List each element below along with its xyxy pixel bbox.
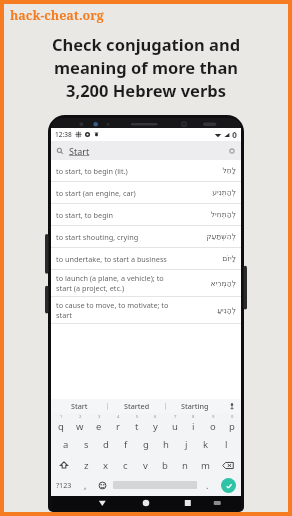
staticText: to cause to move, to motivate; to start	[56, 300, 213, 320]
staticText: hack-cheat.org	[10, 7, 104, 24]
button[interactable]: h	[156, 434, 176, 455]
button[interactable]: 2	[70, 413, 89, 434]
staticText: לְהַמְרִיא	[210, 279, 236, 288]
button[interactable]: d	[96, 434, 116, 455]
button[interactable]: 8	[184, 413, 203, 434]
staticText: לְהַתְחִיל	[210, 210, 236, 219]
button[interactable]: j	[176, 434, 196, 455]
staticText: 12:38	[55, 130, 72, 139]
button[interactable]: Backspace	[215, 455, 241, 475]
button[interactable]: s	[76, 434, 96, 455]
staticText: לָיזֹם	[222, 254, 236, 263]
button[interactable]: x	[96, 455, 115, 475]
staticText: v	[143, 459, 148, 472]
button[interactable]: 7	[165, 413, 184, 434]
staticText: z	[84, 459, 89, 472]
staticText: to undertake, to start a business	[56, 254, 218, 264]
button[interactable]: c	[115, 455, 135, 475]
button[interactable]: Voice input	[223, 399, 241, 413]
staticText: i	[192, 420, 195, 433]
button[interactable]: l	[216, 434, 236, 455]
staticText: לְהַתְנִיע	[212, 188, 236, 197]
staticText: to start, to begin (lit.)	[56, 166, 218, 176]
button[interactable]: 4	[108, 413, 127, 434]
staticText: לְהָנִיעַ	[217, 306, 236, 315]
button[interactable]: 9	[203, 413, 222, 434]
button[interactable]: f	[116, 434, 136, 455]
staticText: u	[172, 420, 178, 433]
staticText: w	[76, 420, 84, 433]
staticText: x	[103, 459, 109, 472]
button[interactable]: b	[155, 455, 175, 475]
staticText: Starting	[181, 401, 209, 411]
staticText: k	[203, 438, 209, 451]
staticText: .	[206, 479, 209, 491]
staticText: 5	[136, 414, 139, 420]
staticText: 3	[98, 414, 101, 420]
staticText: to start, to begin	[56, 210, 206, 220]
button[interactable]: to start shouting, crying	[51, 226, 241, 247]
staticText: y	[153, 420, 158, 433]
button[interactable]: Search	[51, 141, 241, 160]
button[interactable]: 0	[222, 413, 241, 434]
staticText: 8	[192, 414, 195, 420]
staticText: 4	[117, 414, 120, 420]
staticText: r	[116, 420, 120, 433]
staticText: b	[162, 459, 168, 472]
button[interactable]: 1	[51, 413, 70, 434]
staticText: n	[182, 459, 188, 472]
staticText: ,	[84, 479, 87, 491]
staticText: q	[58, 420, 64, 433]
staticText: 9	[212, 414, 215, 420]
staticText: 0	[231, 414, 234, 420]
staticText: to launch (a plane, a vehicle); to start…	[56, 273, 206, 293]
staticText: l	[225, 438, 228, 451]
staticText: e	[96, 420, 102, 433]
button[interactable]: ,	[77, 475, 93, 495]
staticText: Start	[71, 401, 88, 411]
button[interactable]: to start (an engine, car)	[51, 182, 241, 203]
button[interactable]: to cause to move, to motivate; to start	[51, 297, 241, 323]
button[interactable]: 6	[146, 413, 165, 434]
button[interactable]: 5	[127, 413, 146, 434]
staticText: ?123	[56, 480, 72, 490]
staticText: 7	[174, 414, 177, 420]
button[interactable]: to launch (a plane, a vehicle); to start…	[51, 270, 241, 296]
button[interactable]: n	[175, 455, 195, 475]
button[interactable]: z	[77, 455, 96, 475]
button[interactable]: Started	[108, 399, 165, 413]
button[interactable]: to undertake, to start a business	[51, 248, 241, 269]
staticText: 1	[60, 414, 63, 420]
button[interactable]: .	[199, 475, 215, 495]
staticText: 2	[79, 414, 82, 420]
button[interactable]: Search	[221, 478, 236, 493]
button[interactable]: ?123	[51, 475, 77, 495]
other: Clear	[228, 147, 236, 155]
staticText: p	[229, 420, 235, 433]
staticText: Start	[69, 145, 90, 157]
button[interactable]: g	[136, 434, 156, 455]
button[interactable]: m	[195, 455, 215, 475]
staticText: a	[63, 438, 69, 451]
button[interactable]: 3	[89, 413, 108, 434]
button[interactable]: Shift	[51, 455, 77, 475]
staticText: j	[185, 438, 188, 451]
staticText: h	[163, 438, 169, 451]
staticText: Started	[124, 401, 150, 411]
button[interactable]: Start	[51, 399, 107, 413]
other: Search	[56, 147, 64, 155]
staticText: g	[143, 438, 149, 451]
button[interactable]: to start, to begin	[51, 204, 241, 225]
staticText: t	[135, 420, 139, 433]
button[interactable]: Starting	[166, 399, 223, 413]
button[interactable]: a	[56, 434, 76, 455]
button[interactable]: v	[135, 455, 155, 475]
staticText: o	[210, 420, 216, 433]
staticText: 6	[154, 414, 157, 420]
button[interactable]: k	[196, 434, 216, 455]
button[interactable]: to start, to begin (lit.)	[51, 160, 241, 181]
staticText: s	[84, 438, 89, 451]
button[interactable]: Emoji	[93, 475, 111, 495]
staticText: לְהִשְׁתַּעֵק	[206, 232, 236, 241]
